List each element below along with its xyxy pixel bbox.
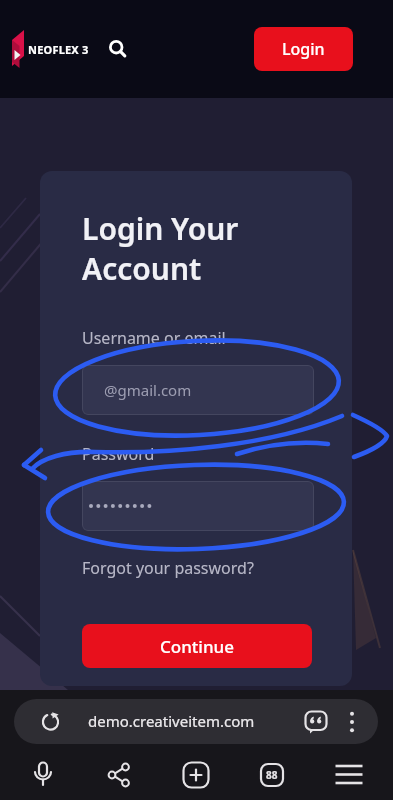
button[interactable]: 88 (248, 753, 296, 797)
staticText: 88 (266, 768, 278, 782)
button[interactable] (325, 753, 373, 797)
staticText: Continue (160, 635, 235, 658)
button[interactable] (101, 32, 135, 66)
staticText: Login Your Account (82, 208, 239, 289)
staticText: Password (82, 443, 155, 465)
button[interactable] (95, 753, 143, 797)
button[interactable] (82, 481, 314, 531)
staticText: Username or email (82, 327, 226, 349)
staticText: NEOFLEX 3 (28, 42, 89, 57)
staticText: Login (282, 38, 325, 60)
staticText: @gmail.com (104, 380, 192, 400)
button[interactable]: Forgot your password? (82, 557, 254, 579)
button[interactable] (172, 753, 220, 797)
button[interactable] (19, 753, 67, 797)
staticText: demo.creativeitem.com (88, 711, 255, 731)
button[interactable]: Login (254, 27, 353, 71)
button[interactable]: Continue (82, 624, 312, 668)
button[interactable]: @gmail.com (82, 365, 314, 415)
button[interactable]: demo.creativeitem.com (14, 699, 378, 744)
